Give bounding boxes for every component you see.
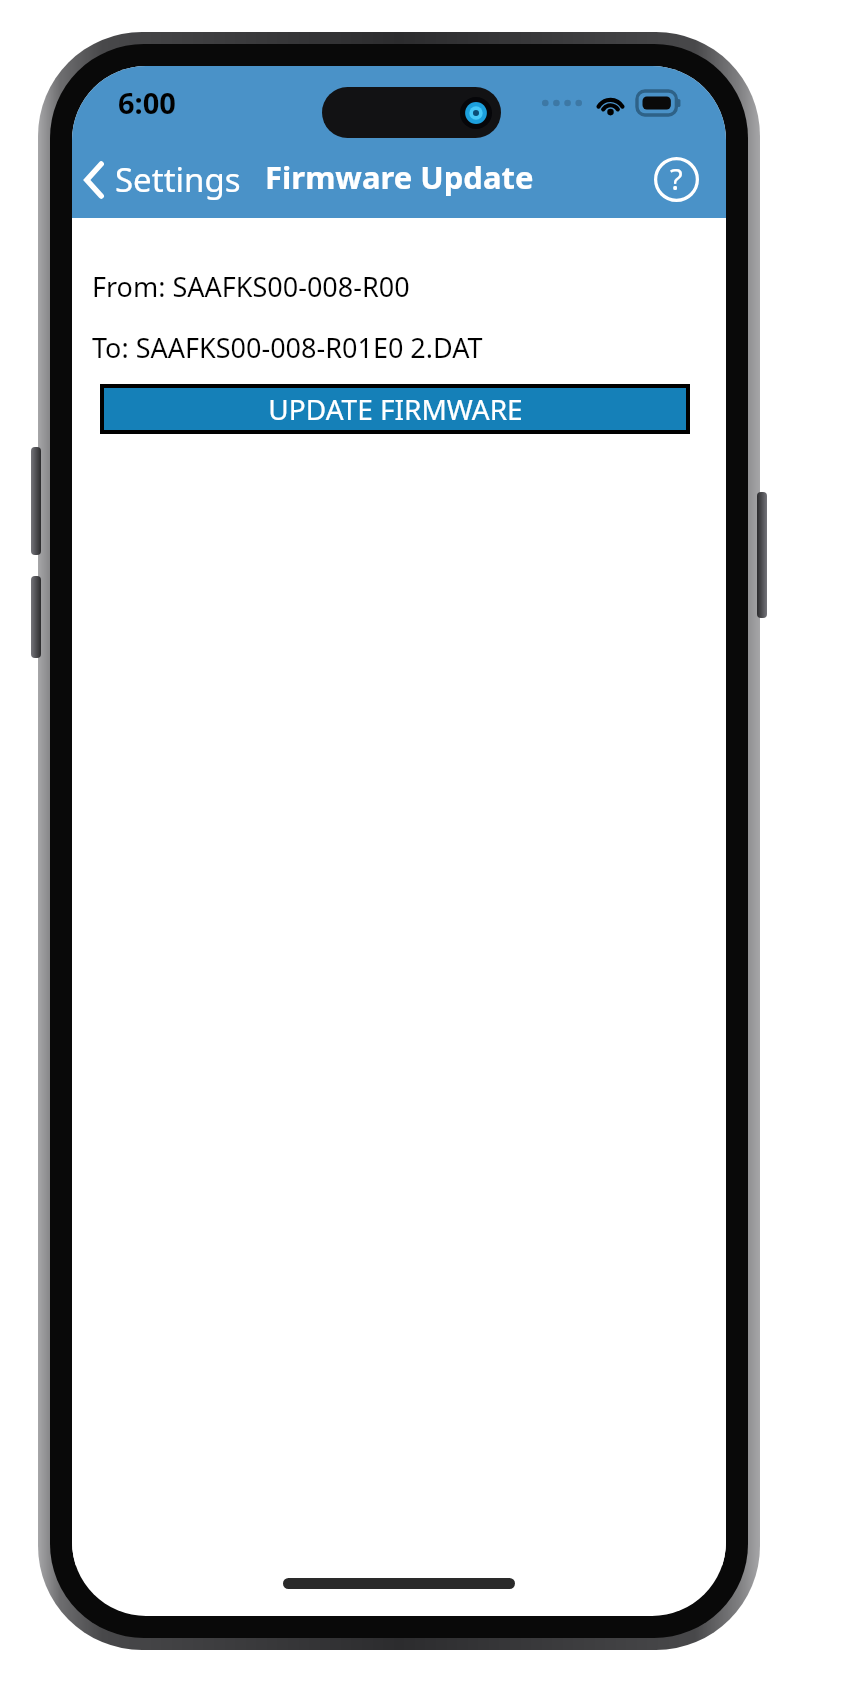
staticText: From: SAAFKS00-008-R00 <box>92 268 410 305</box>
button[interactable]: UPDATE FIRMWARE <box>104 388 686 430</box>
button[interactable]: Help <box>651 154 701 204</box>
staticText: To: SAAFKS00-008-R01E0 2.DAT <box>92 329 483 366</box>
staticText: 6:00 <box>118 83 176 122</box>
staticText: ? <box>670 159 683 198</box>
staticText: Settings <box>115 157 241 202</box>
staticText: UPDATE FIRMWARE <box>268 390 523 428</box>
staticText: Firmware Update <box>265 156 534 198</box>
button[interactable]: Settings <box>72 151 253 208</box>
